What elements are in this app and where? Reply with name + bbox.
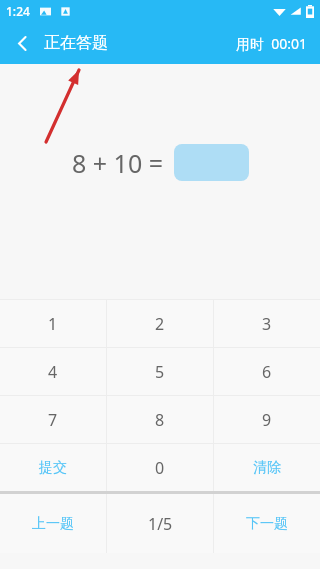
button[interactable]: 1/5 [107,494,213,553]
staticText: 3 [262,313,272,335]
button[interactable]: 7 [0,396,106,443]
staticText: 9 [262,409,272,431]
button[interactable]: 下一题 [214,494,320,553]
staticText: 7 [48,409,58,431]
staticText: 正在答题 [44,33,108,53]
button[interactable]: 6 [214,348,320,395]
staticText: 8 [155,409,165,431]
staticText: 下一题 [246,515,288,533]
staticText: 1:24 [6,3,30,19]
staticText: 5 [155,361,165,383]
staticText: 1/5 [148,513,173,535]
button[interactable]: 清除 [214,444,320,491]
button[interactable]: 3 [214,300,320,347]
staticText: 2 [155,313,165,335]
button[interactable]: 4 [0,348,106,395]
button[interactable]: 9 [214,396,320,443]
button[interactable]: 0 [107,444,213,491]
button[interactable] [174,144,249,181]
staticText: 4 [48,361,58,383]
staticText: 8 + 10 = [72,146,164,180]
button[interactable]: 1 [0,300,106,347]
staticText: 1 [48,313,58,335]
staticText: 用时 00:01 [236,34,308,53]
button[interactable]: Back [0,22,44,64]
button[interactable]: 提交 [0,444,106,491]
staticText: 清除 [253,459,281,477]
button[interactable]: 上一题 [0,494,106,553]
staticText: 提交 [39,459,67,477]
staticText: 6 [262,361,272,383]
staticText: 上一题 [32,515,74,533]
button[interactable]: 5 [107,348,213,395]
button[interactable]: 8 [107,396,213,443]
button[interactable]: 2 [107,300,213,347]
staticText: 0 [155,457,165,479]
